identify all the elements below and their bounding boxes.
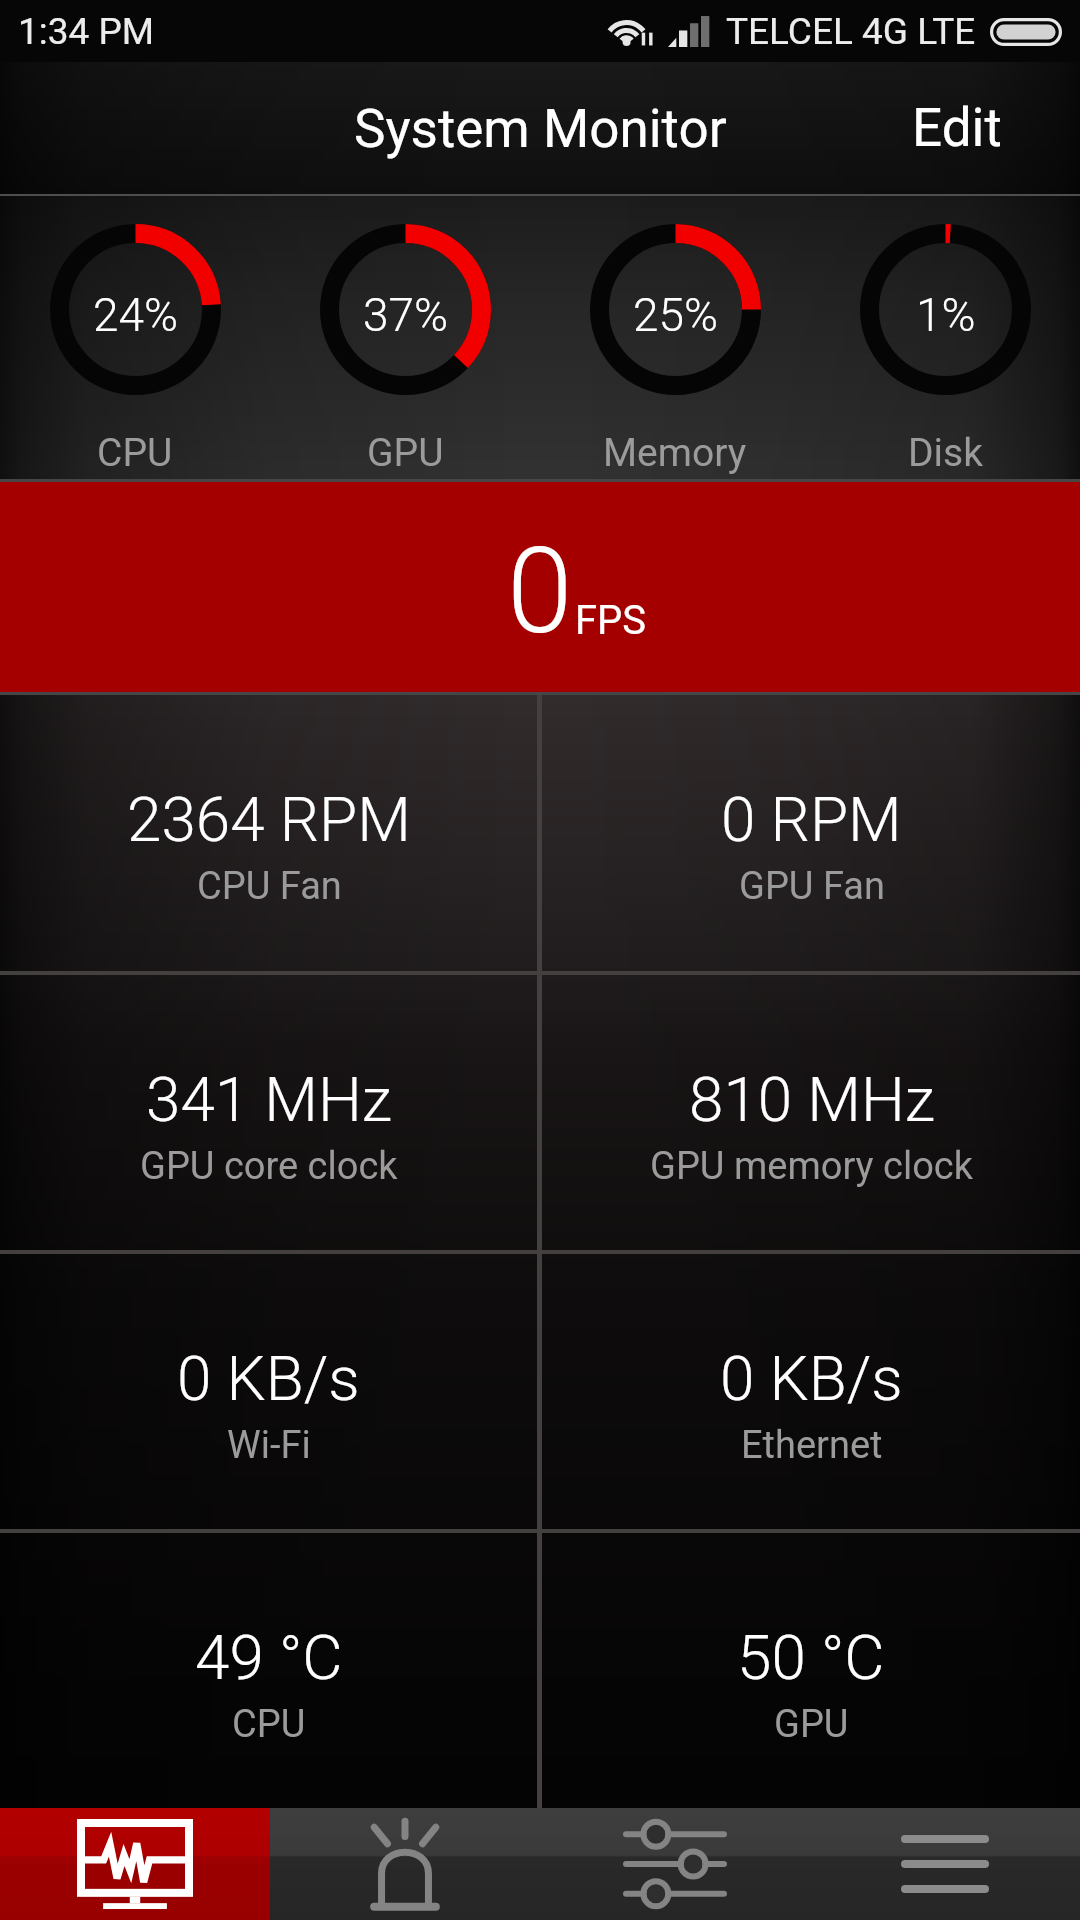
staticText: GPU core clock [140, 1144, 398, 1189]
staticText: 0 [507, 523, 573, 661]
staticText: 0 KB/s [177, 1342, 360, 1415]
staticText: 0 RPM [721, 783, 902, 856]
button[interactable]: Edit [882, 75, 1080, 181]
button[interactable]: 2364 RPM [0, 695, 537, 971]
staticText: 2364 RPM [127, 783, 411, 856]
staticText: 49 °C [195, 1621, 343, 1694]
button[interactable]: Alerts [270, 1808, 540, 1920]
button[interactable]: 0 RPM [542, 695, 1080, 971]
staticText: Edit [912, 97, 1002, 159]
staticText: 341 MHz [146, 1063, 392, 1136]
staticText: 24% [93, 288, 179, 342]
button[interactable]: 0 [0, 482, 1080, 692]
staticText: 0 KB/s [720, 1342, 903, 1415]
staticText: Memory [603, 430, 747, 476]
staticText: GPU Fan [739, 864, 885, 909]
staticText: CPU Fan [197, 864, 342, 909]
button[interactable]: Settings [540, 1808, 810, 1920]
button[interactable]: 50 °C [542, 1533, 1080, 1808]
staticText: GPU [367, 430, 444, 476]
staticText: 37% [363, 288, 449, 342]
button[interactable]: Menu [810, 1808, 1080, 1920]
staticText: 25% [633, 288, 719, 342]
button[interactable]: 810 MHz [542, 975, 1080, 1250]
staticText: 1:34 PM [18, 10, 155, 53]
staticText: Disk [908, 430, 983, 476]
staticText: System Monitor [354, 98, 727, 160]
button[interactable]: 341 MHz [0, 975, 537, 1250]
staticText: FPS [575, 597, 647, 644]
staticText: Ethernet [741, 1423, 883, 1468]
staticText: CPU [232, 1702, 306, 1747]
staticText: Wi-Fi [227, 1423, 311, 1468]
staticText: GPU memory clock [650, 1144, 973, 1189]
button[interactable]: 49 °C [0, 1533, 537, 1808]
button[interactable]: 0 KB/s [0, 1254, 537, 1529]
staticText: TELCEL 4G LTE [726, 10, 976, 53]
staticText: 1% [916, 288, 976, 342]
staticText: 50 °C [737, 1621, 885, 1694]
staticText: GPU [774, 1702, 849, 1747]
button[interactable]: Monitor [0, 1808, 270, 1920]
staticText: CPU [97, 430, 173, 476]
staticText: 810 MHz [689, 1063, 935, 1136]
button[interactable]: 0 KB/s [542, 1254, 1080, 1529]
